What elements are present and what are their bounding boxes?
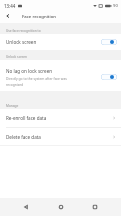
staticText: No lag on lock screen: [6, 68, 53, 74]
staticText: 90: [113, 3, 118, 9]
button[interactable]: No lag on lock screen: [0, 60, 121, 91]
staticText: Unlock screen: [6, 39, 37, 45]
button[interactable]: Recent apps: [87, 199, 103, 215]
button[interactable]: Delete face data: [0, 128, 121, 145]
staticText: 13:44: [4, 3, 16, 9]
staticText: Directly go to the system after face was…: [6, 76, 67, 87]
button[interactable]: Back: [0, 11, 16, 20]
button[interactable]: Back: [18, 199, 34, 215]
staticText: Delete face data: [6, 134, 41, 140]
button[interactable]: Unlock screen: [0, 34, 121, 50]
staticText: Unlock screen: [6, 55, 27, 59]
button[interactable]: Re-enroll face data: [0, 109, 121, 127]
staticText: Face recognition: [22, 13, 56, 19]
staticText: Re-enroll face data: [6, 115, 47, 121]
button[interactable]: Home: [53, 199, 69, 215]
staticText: Use face recognition to: [6, 29, 41, 33]
staticText: Manage: [6, 104, 19, 108]
